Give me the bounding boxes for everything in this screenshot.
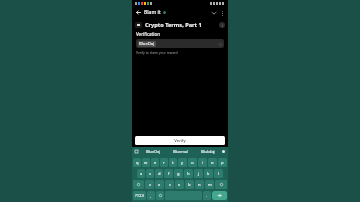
staticText: w bbox=[144, 160, 148, 166]
button[interactable]: h bbox=[184, 169, 193, 178]
button[interactable]: i bbox=[198, 158, 207, 167]
staticText: Bluemal bbox=[173, 149, 188, 154]
staticText: q bbox=[136, 160, 139, 166]
button[interactable]: p bbox=[218, 158, 227, 167]
button[interactable]: Verify bbox=[135, 136, 225, 145]
button[interactable]: BlueDaj bbox=[136, 39, 224, 48]
staticText: e bbox=[154, 160, 157, 166]
button[interactable]: s bbox=[146, 169, 154, 178]
staticText: p bbox=[221, 160, 224, 166]
staticText: Verify bbox=[174, 138, 186, 144]
staticText: v bbox=[178, 182, 181, 188]
button[interactable]: r bbox=[160, 158, 168, 167]
staticText: f bbox=[168, 171, 170, 177]
staticText: Crypto Terms, Part 1 bbox=[145, 21, 202, 29]
staticText: j bbox=[198, 171, 200, 177]
staticText: n bbox=[198, 182, 201, 188]
button[interactable]: BlueDaj bbox=[139, 147, 167, 156]
staticText: g bbox=[177, 171, 180, 177]
staticText: , bbox=[150, 193, 152, 199]
button[interactable]: ?123 bbox=[133, 191, 146, 200]
button[interactable]: Emoji bbox=[156, 191, 164, 200]
button[interactable]: n bbox=[195, 180, 204, 189]
button[interactable]: e bbox=[151, 158, 159, 167]
button[interactable]: j bbox=[194, 169, 203, 178]
staticText: z bbox=[149, 182, 151, 188]
staticText: BlueDaj bbox=[139, 41, 155, 47]
button[interactable]: v bbox=[175, 180, 184, 189]
staticText: s bbox=[149, 171, 151, 177]
button[interactable]: More options bbox=[218, 9, 226, 17]
staticText: Blam it bbox=[144, 9, 161, 16]
staticText: a bbox=[140, 171, 143, 177]
button[interactable]: Enter bbox=[212, 191, 227, 200]
button[interactable]: Bluemal bbox=[167, 147, 194, 156]
button[interactable]: z bbox=[145, 180, 154, 189]
button[interactable]: Expand bbox=[210, 9, 218, 17]
staticText: t bbox=[172, 160, 174, 166]
button[interactable]: w bbox=[142, 158, 150, 167]
staticText: b bbox=[188, 182, 191, 188]
button[interactable]: Shift bbox=[133, 180, 144, 189]
button[interactable]: l bbox=[214, 169, 223, 178]
staticText: h bbox=[187, 171, 190, 177]
button[interactable]: x bbox=[155, 180, 164, 189]
button[interactable]: t bbox=[169, 158, 177, 167]
button[interactable]: f bbox=[164, 169, 173, 178]
staticText: c bbox=[169, 182, 171, 188]
staticText: i bbox=[222, 23, 223, 28]
button[interactable]: o bbox=[208, 158, 217, 167]
staticText: d bbox=[158, 171, 161, 177]
staticText: ?123 bbox=[135, 193, 144, 199]
button[interactable]: c bbox=[165, 180, 174, 189]
staticText: Verification bbox=[136, 31, 160, 37]
staticText: r bbox=[163, 160, 165, 166]
staticText: y bbox=[181, 160, 184, 166]
button[interactable]: , bbox=[147, 191, 155, 200]
button[interactable]: d bbox=[155, 169, 163, 178]
staticText: m bbox=[208, 182, 212, 188]
staticText: i bbox=[202, 160, 204, 166]
button[interactable]: Voice input bbox=[221, 149, 226, 154]
button[interactable]: Blukdaj bbox=[194, 147, 221, 156]
staticText: Blukdaj bbox=[201, 149, 215, 154]
button[interactable]: y bbox=[178, 158, 187, 167]
button[interactable]: u bbox=[188, 158, 197, 167]
staticText: . bbox=[206, 193, 208, 199]
button[interactable]: Back bbox=[134, 8, 143, 17]
staticText: l bbox=[218, 171, 220, 177]
button[interactable]: m bbox=[205, 180, 214, 189]
button[interactable]: g bbox=[174, 169, 183, 178]
button[interactable]: q bbox=[133, 158, 141, 167]
button[interactable]: k bbox=[204, 169, 213, 178]
staticText: Verify to claim your reward bbox=[136, 50, 178, 54]
staticText: o bbox=[211, 160, 214, 166]
button[interactable]: Info bbox=[219, 22, 225, 28]
button[interactable]: b bbox=[185, 180, 194, 189]
staticText: x bbox=[158, 182, 161, 188]
button[interactable]: a bbox=[137, 169, 145, 178]
staticText: u bbox=[191, 160, 194, 166]
staticText: k bbox=[207, 171, 210, 177]
staticText: BlueDaj bbox=[146, 149, 161, 154]
button[interactable]: . bbox=[203, 191, 211, 200]
button[interactable]: Backspace bbox=[215, 180, 227, 189]
button[interactable]: Keyboard settings bbox=[134, 149, 139, 154]
